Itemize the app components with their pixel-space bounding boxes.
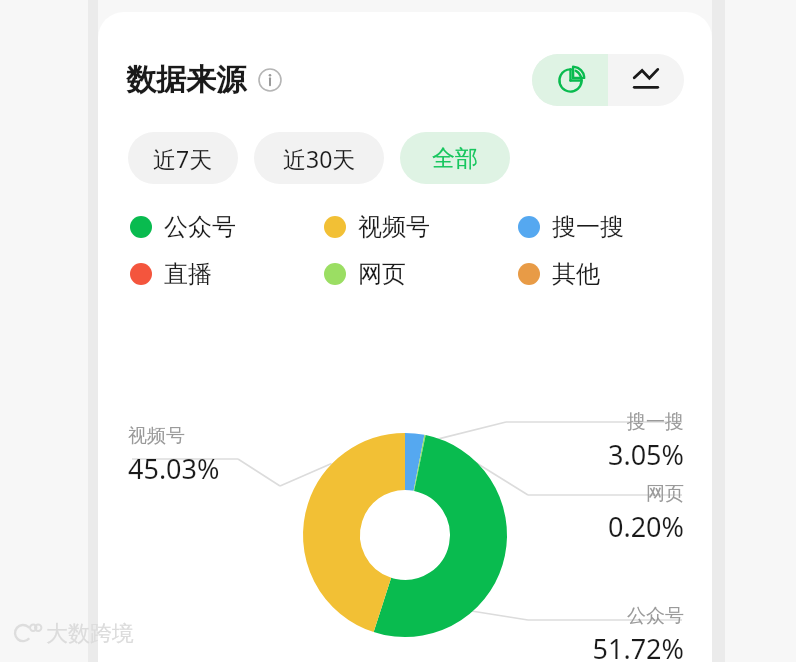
staticText: 全部 [432, 144, 478, 173]
staticText: 公众号 [627, 604, 684, 628]
staticText: 0.20% [607, 508, 684, 545]
staticText: 网页 [358, 259, 406, 289]
button[interactable]: 公众号 [130, 212, 324, 242]
button[interactable]: 饼图 [532, 54, 608, 106]
button[interactable]: 搜一搜 [518, 212, 688, 242]
button[interactable]: 折线图 [608, 54, 684, 106]
staticText: 近7天 [153, 143, 213, 174]
staticText: 其他 [552, 259, 600, 289]
staticText: 近30天 [283, 143, 356, 174]
staticText: 51.72% [592, 630, 684, 662]
staticText: 搜一搜 [627, 410, 684, 434]
button[interactable]: 其他 [518, 259, 688, 289]
staticText: 视频号 [358, 212, 430, 242]
staticText: 45.03% [128, 450, 220, 487]
button[interactable]: 近30天 [254, 132, 384, 184]
staticText: 大数跨境 [46, 620, 134, 648]
button[interactable]: 视频号 [324, 212, 518, 242]
button[interactable]: 网页 [324, 259, 518, 289]
staticText: 数据来源 [126, 61, 246, 99]
other: 数据来源饼图 [98, 12, 712, 662]
staticText: 3.05% [607, 436, 684, 473]
staticText: 视频号 [128, 424, 185, 448]
button[interactable]: 直播 [130, 259, 324, 289]
button[interactable]: 信息说明 [258, 68, 282, 92]
staticText: 搜一搜 [552, 212, 624, 242]
staticText: 直播 [164, 259, 212, 289]
button[interactable]: 近7天 [128, 132, 238, 184]
staticText: 公众号 [164, 212, 236, 242]
staticText: 网页 [646, 482, 684, 506]
button[interactable]: 全部 [400, 132, 510, 184]
